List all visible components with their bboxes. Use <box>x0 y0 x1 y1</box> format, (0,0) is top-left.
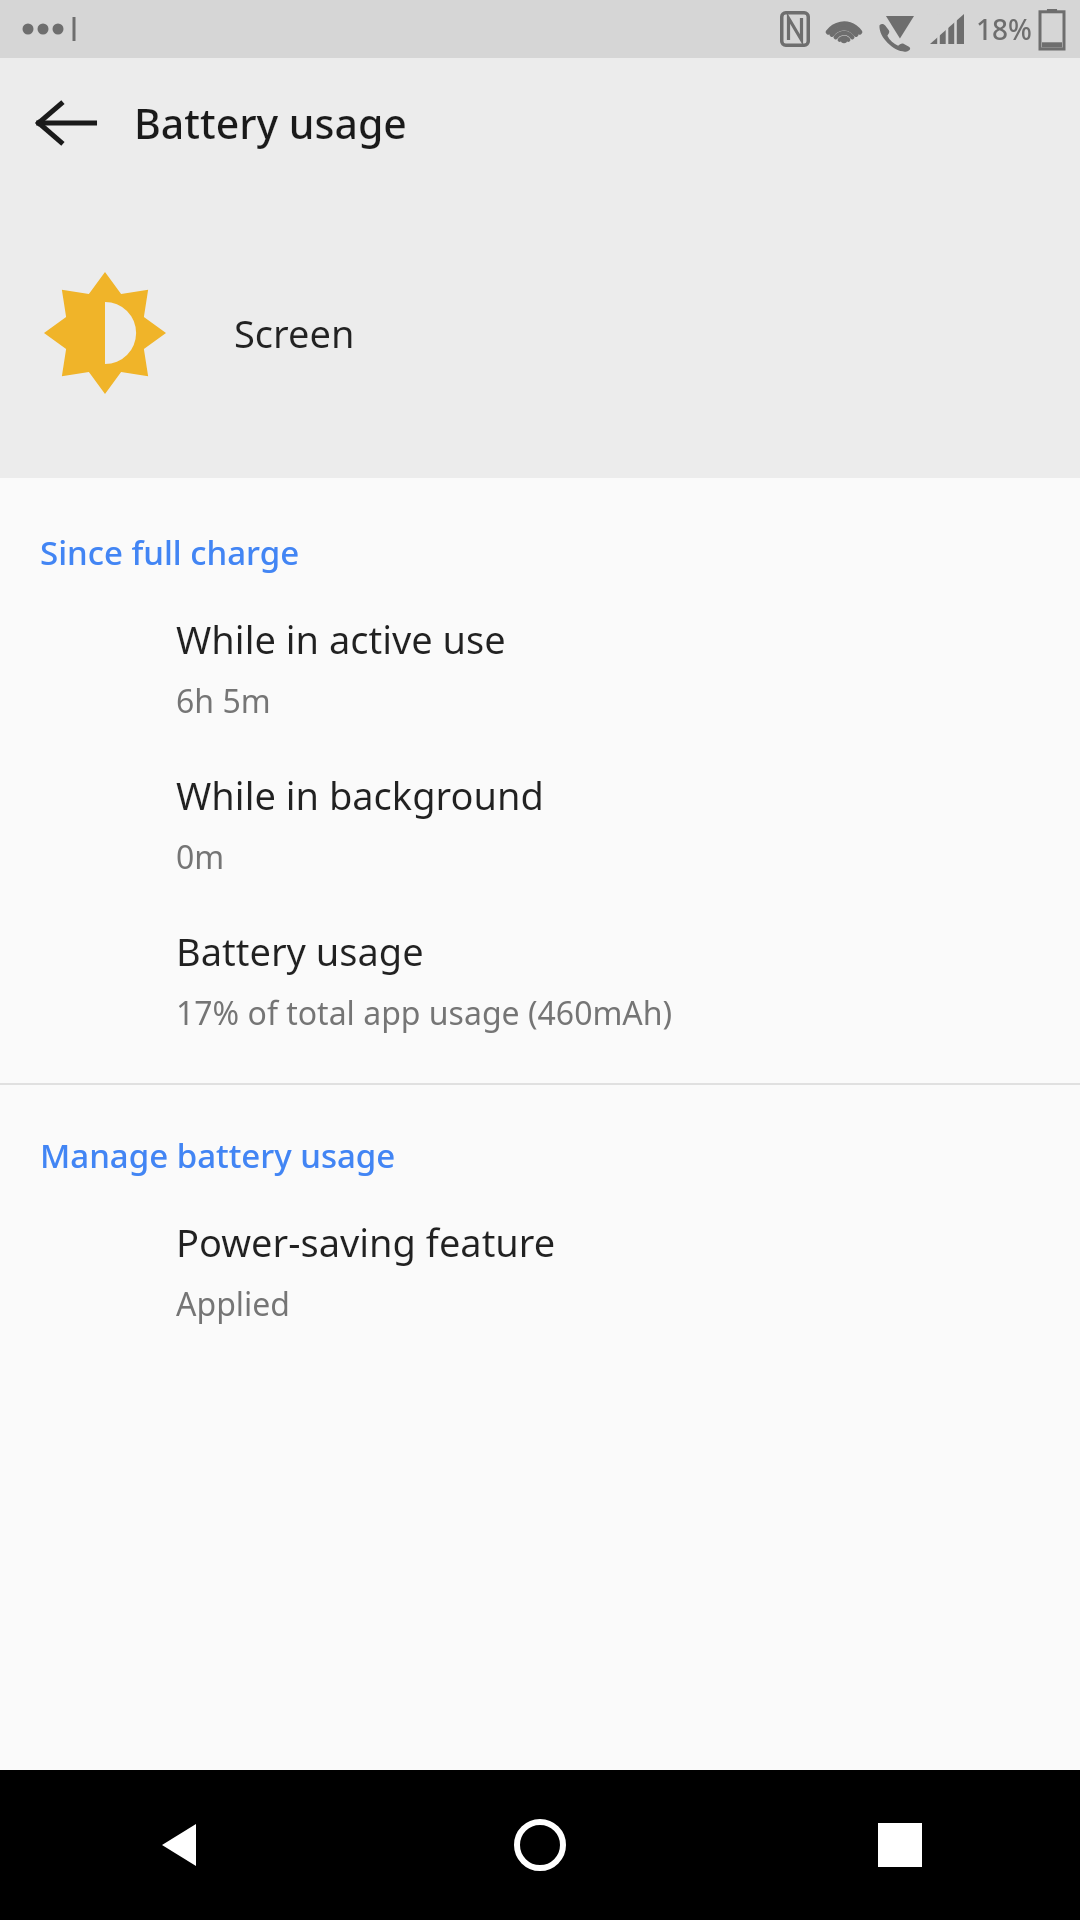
staticText: Battery usage <box>134 95 407 151</box>
staticText: 18% <box>976 10 1032 48</box>
staticText: Screen <box>234 307 355 359</box>
button[interactable]: Back <box>18 75 114 171</box>
staticText: Battery usage <box>176 925 424 977</box>
button[interactable]: Manage battery usage <box>0 1133 1080 1178</box>
staticText: While in background <box>176 769 544 821</box>
button[interactable]: Back <box>0 1770 360 1920</box>
staticText: Power-saving feature <box>176 1216 556 1268</box>
button[interactable]: Power-saving feature <box>0 1216 1080 1326</box>
staticText: 17% of total app usage (460mAh) <box>176 991 673 1035</box>
button[interactable]: Recent apps <box>720 1770 1080 1920</box>
button[interactable]: Screen <box>0 188 1080 478</box>
staticText: Applied <box>176 1282 291 1326</box>
staticText: Since full charge <box>40 530 300 575</box>
button[interactable]: Since full charge <box>0 530 1080 575</box>
button[interactable]: Battery usage <box>0 925 1080 1035</box>
staticText: While in active use <box>176 613 506 665</box>
button[interactable]: While in background <box>0 769 1080 879</box>
staticText: Manage battery usage <box>40 1133 396 1178</box>
staticText: 0m <box>176 835 225 879</box>
staticText: 6h 5m <box>176 679 271 723</box>
button[interactable]: Home <box>360 1770 720 1920</box>
button[interactable]: While in active use <box>0 613 1080 723</box>
